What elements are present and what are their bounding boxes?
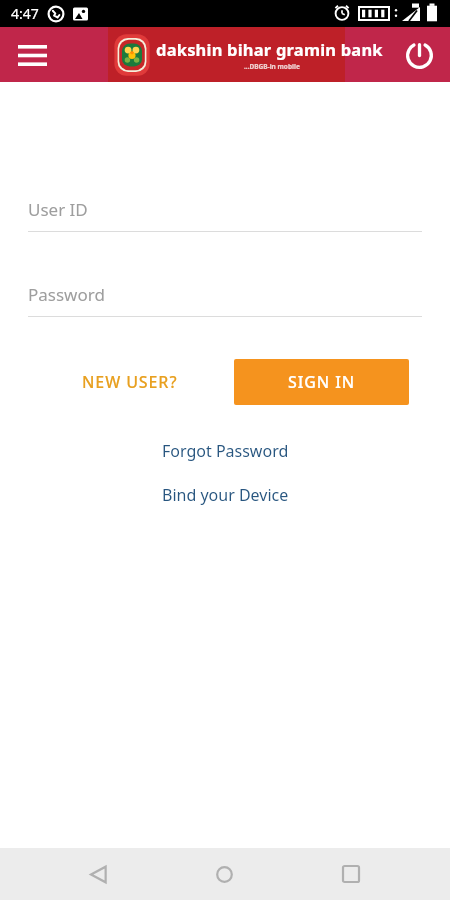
staticText: NEW USER? bbox=[82, 371, 178, 393]
button[interactable]: NEW USER? bbox=[41, 359, 218, 405]
button[interactable]: SIGN IN bbox=[234, 359, 409, 405]
staticText: dakshin bihar gramin bank bbox=[156, 38, 383, 60]
button[interactable]: Recent apps bbox=[323, 848, 379, 900]
staticText: 4:47 bbox=[11, 4, 39, 23]
staticText: Forgot Password bbox=[162, 440, 289, 462]
staticText: Bind your Device bbox=[162, 484, 289, 506]
button[interactable]: Forgot Password bbox=[154, 437, 297, 465]
staticText: ...DBGB-in mobile bbox=[244, 62, 300, 71]
staticText: SIGN IN bbox=[288, 371, 356, 393]
button[interactable]: Logout bbox=[396, 32, 442, 78]
button[interactable]: Bind your Device bbox=[154, 481, 297, 509]
button[interactable]: Menu bbox=[10, 33, 54, 77]
button[interactable]: Back bbox=[70, 848, 126, 900]
button[interactable]: Home bbox=[196, 848, 252, 900]
staticText: User ID bbox=[28, 198, 88, 221]
staticText: Password bbox=[28, 283, 105, 306]
